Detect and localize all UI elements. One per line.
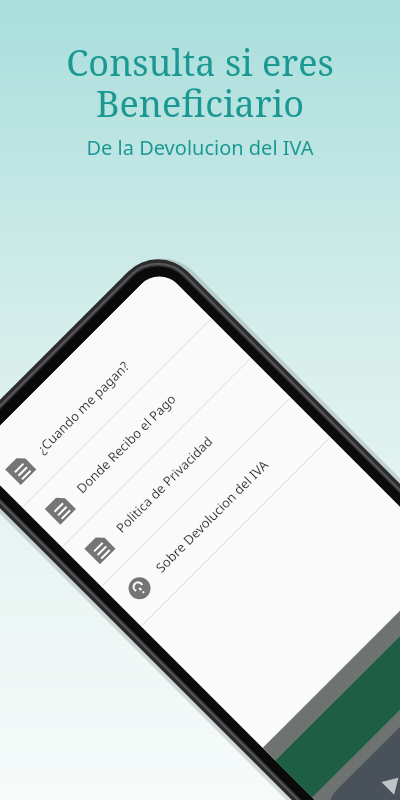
button[interactable]: De la Devolucion del IVA <box>86 134 314 161</box>
staticText: Consulta si eres Beneficiario <box>66 38 334 128</box>
